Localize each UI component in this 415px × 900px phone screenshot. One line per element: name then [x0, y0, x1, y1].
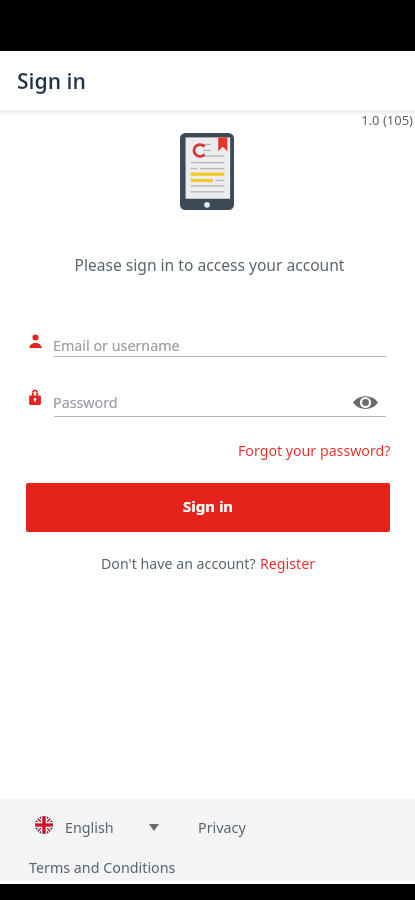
staticText: Don't have an account?	[101, 554, 260, 573]
button[interactable]: Terms and Conditions	[21, 852, 184, 883]
button[interactable]: Password	[26, 386, 390, 417]
staticText: 1.0 (105)	[0, 111, 413, 129]
staticText: Forgot your password?	[238, 441, 391, 460]
staticText: Sign in	[17, 67, 86, 96]
button[interactable]: Sign in	[26, 483, 390, 532]
button[interactable]: Email or username	[26, 326, 390, 357]
staticText: Register	[260, 554, 315, 573]
button[interactable]: Privacy	[190, 812, 254, 843]
button[interactable]: Show password	[353, 394, 378, 411]
staticText: Email or username	[53, 336, 180, 355]
staticText: Please sign in to access your account	[4, 254, 415, 275]
button[interactable]: English	[30, 811, 165, 839]
staticText: English	[65, 818, 114, 837]
button[interactable]: Forgot your password?	[231, 436, 398, 464]
button[interactable]: Register	[260, 554, 315, 573]
staticText: Sign in	[183, 496, 234, 516]
staticText: Password	[53, 393, 118, 412]
